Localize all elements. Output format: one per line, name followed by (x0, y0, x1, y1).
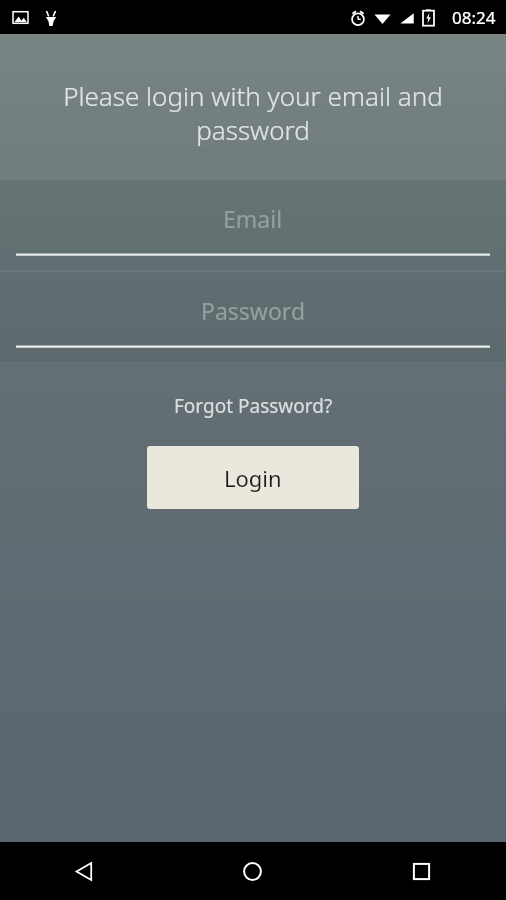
button[interactable]: Email (0, 180, 506, 270)
staticText: Password (201, 295, 306, 326)
staticText: 08:24 (452, 6, 496, 29)
staticText: Forgot Password? (174, 393, 333, 419)
button[interactable]: Recent apps (337, 842, 506, 900)
button[interactable]: Back (0, 842, 168, 900)
button[interactable]: Login (147, 446, 359, 509)
button[interactable]: Home (168, 842, 337, 900)
staticText: Login (224, 463, 282, 493)
button[interactable]: Password (0, 272, 506, 362)
button[interactable]: Forgot Password? (164, 390, 343, 422)
staticText: Please login with your email and passwor… (26, 78, 480, 148)
staticText: Email (223, 203, 283, 234)
